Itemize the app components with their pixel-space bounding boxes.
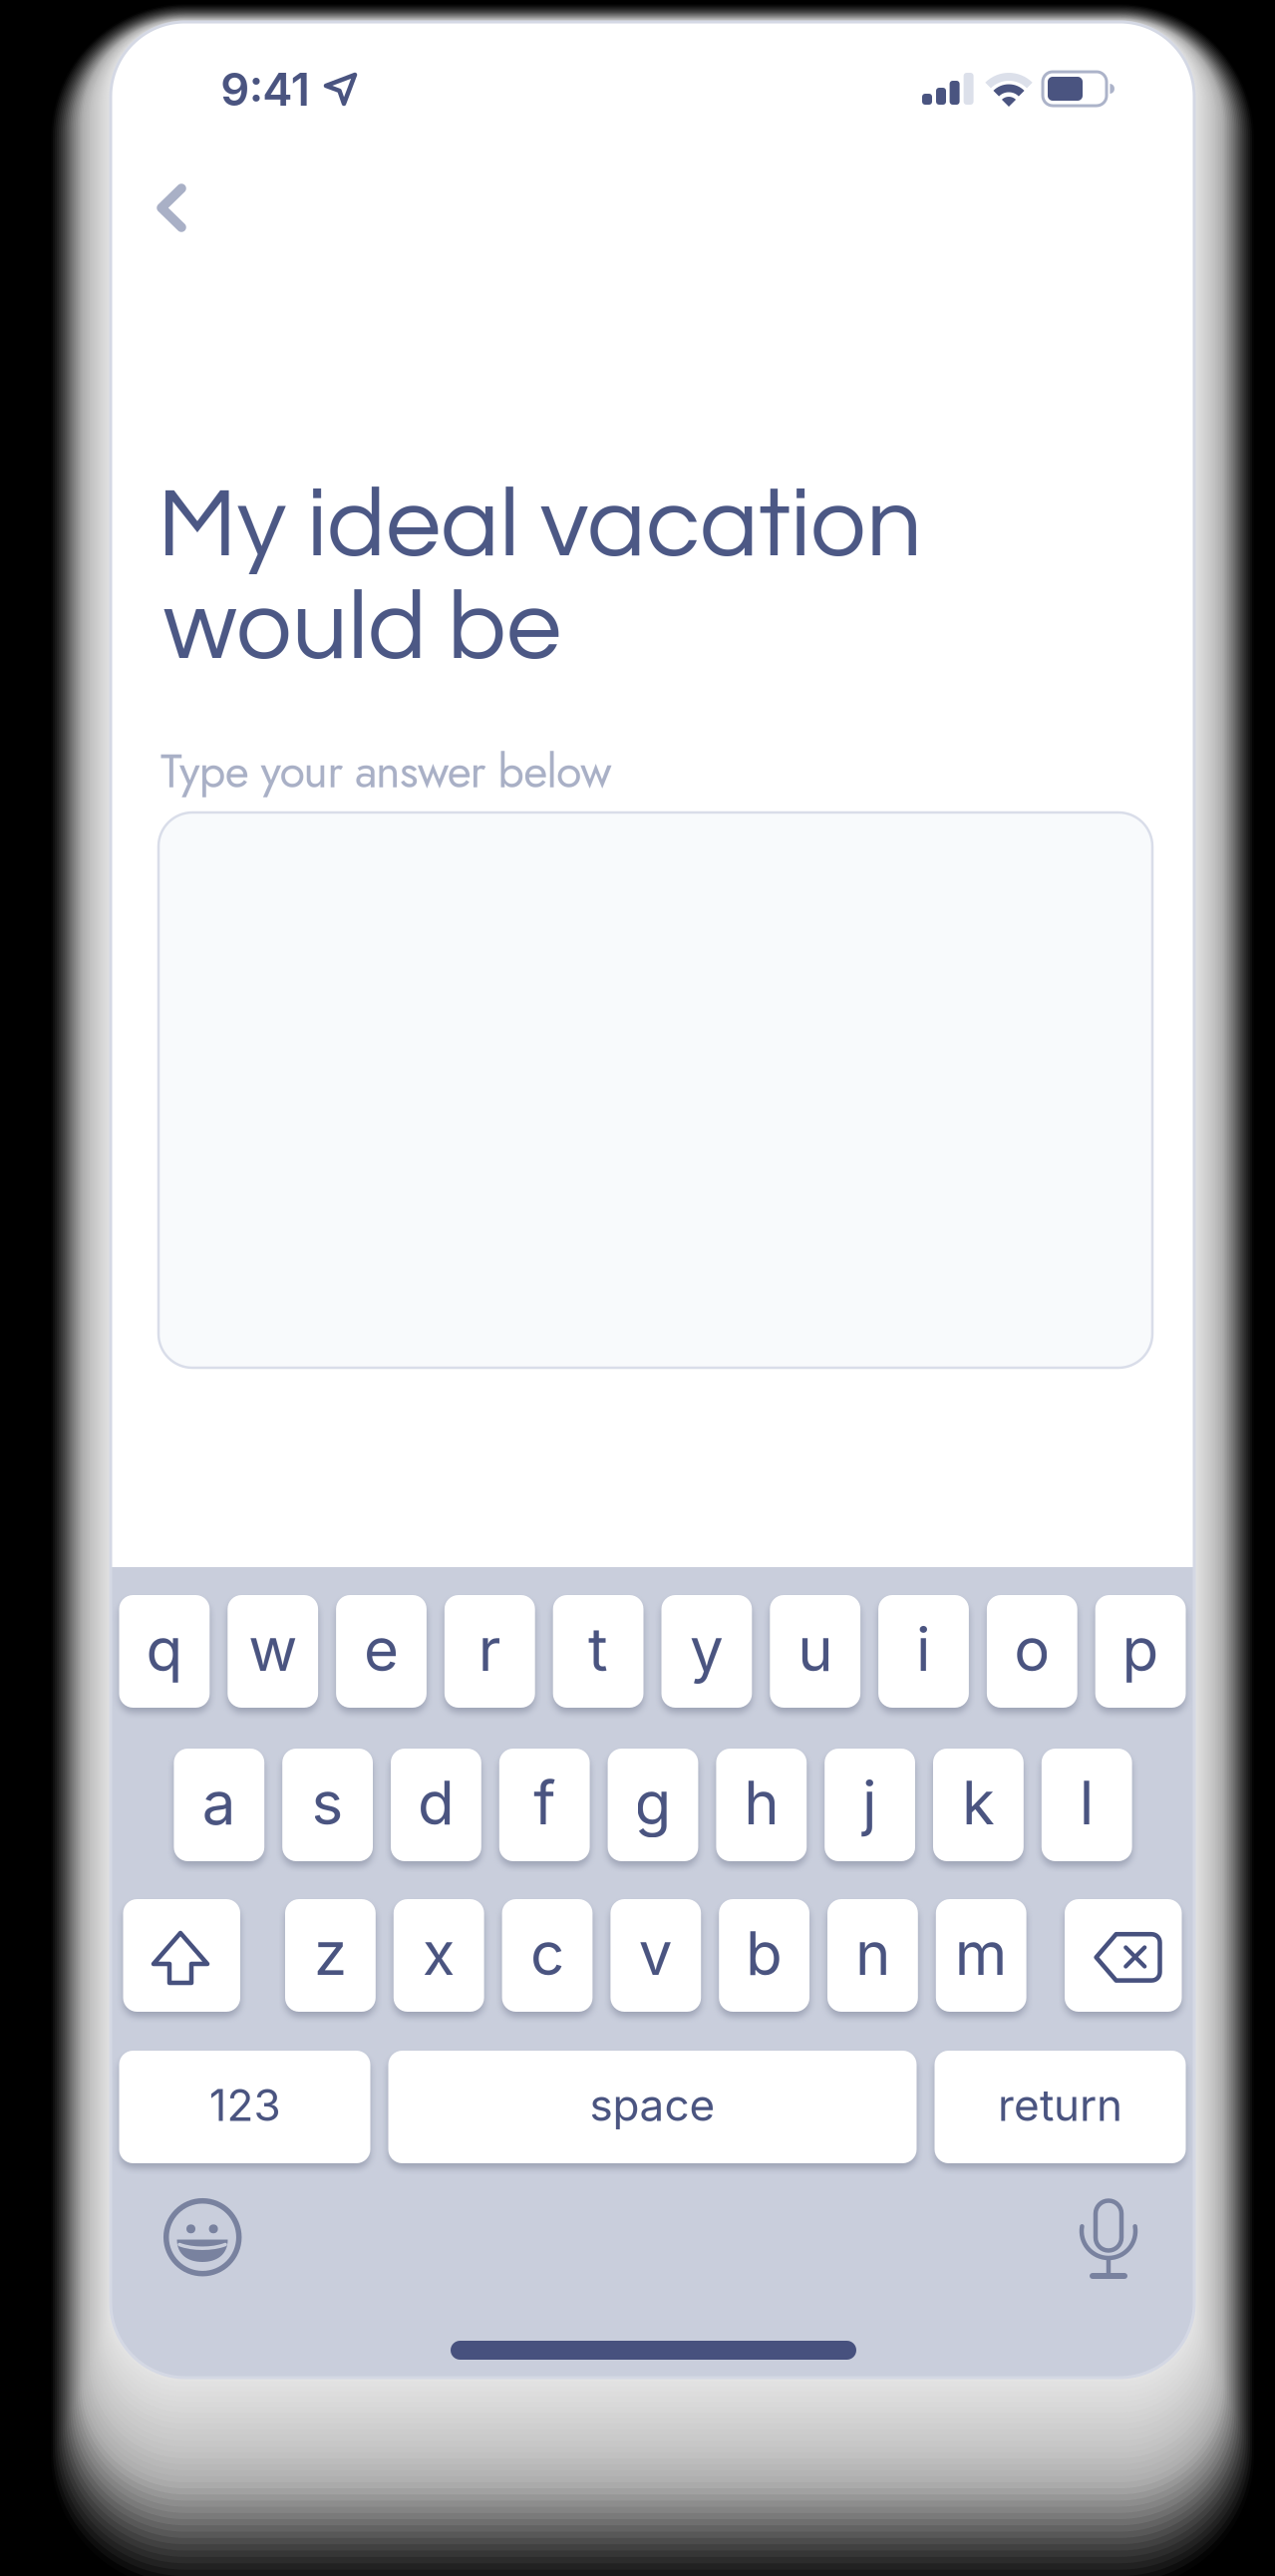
staticText: m bbox=[955, 1917, 1008, 1990]
staticText: e bbox=[364, 1613, 399, 1686]
staticText: f bbox=[534, 1767, 555, 1839]
staticText: j bbox=[862, 1767, 877, 1839]
staticText: x bbox=[422, 1917, 455, 1990]
staticText: q bbox=[146, 1613, 183, 1686]
staticText: My ideal vacation bbox=[158, 475, 922, 576]
staticText: l bbox=[1079, 1767, 1094, 1839]
staticText: g bbox=[635, 1767, 671, 1839]
staticText: v bbox=[639, 1917, 673, 1990]
staticText: return bbox=[998, 2078, 1122, 2131]
staticText: z bbox=[314, 1917, 347, 1990]
staticText: k bbox=[962, 1767, 995, 1839]
staticText: s bbox=[312, 1767, 344, 1839]
staticText: n bbox=[855, 1917, 890, 1990]
staticText: h bbox=[744, 1767, 779, 1839]
staticText: d bbox=[418, 1767, 454, 1839]
staticText: r bbox=[478, 1613, 501, 1686]
staticText: y bbox=[690, 1613, 724, 1686]
staticText: u bbox=[798, 1613, 833, 1686]
staticText: 9:41 bbox=[221, 62, 310, 117]
staticText: b bbox=[746, 1917, 783, 1990]
staticText: o bbox=[1014, 1613, 1050, 1686]
staticText: space bbox=[590, 2078, 715, 2131]
staticText: would be bbox=[163, 577, 561, 678]
staticText: t bbox=[588, 1613, 608, 1686]
staticText: p bbox=[1122, 1613, 1159, 1686]
staticText: Type your answer below bbox=[160, 738, 612, 805]
staticText: c bbox=[530, 1917, 564, 1990]
staticText: 123 bbox=[209, 2078, 281, 2131]
staticText: i bbox=[916, 1613, 931, 1686]
staticText: w bbox=[248, 1613, 297, 1686]
staticText: a bbox=[202, 1767, 236, 1839]
